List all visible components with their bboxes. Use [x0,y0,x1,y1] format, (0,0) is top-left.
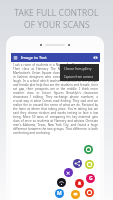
staticText: TAKE FULL CONTROL [14,7,99,19]
staticText: Capture from camera [64,75,94,79]
button[interactable]: Close [64,168,73,177]
button[interactable]: Capture from camera [60,73,99,81]
button[interactable]: Share [73,159,82,168]
button[interactable]: Messages [71,190,80,199]
button[interactable]: Camera [93,55,98,60]
staticText: G [89,175,93,182]
staticText: OF YOUR SCANS [24,19,90,31]
button[interactable]: Mail [55,189,64,198]
button[interactable]: Menu [13,55,18,60]
button[interactable]: Google [86,174,95,183]
staticText: M [57,190,62,197]
button[interactable]: Refresh [84,145,93,154]
button[interactable]: Reload [85,188,94,197]
button[interactable]: Notifications [75,179,84,188]
staticText: Image to Text [21,55,47,60]
button[interactable]: Sync [85,160,94,169]
staticText: ✕ [66,170,71,176]
staticText: Choose from gallery [64,67,92,71]
button[interactable]: Choose from gallery [60,64,99,73]
staticText: I ask a room of students in a Naperville… [13,63,98,135]
button[interactable]: Wi-Fi [57,178,66,187]
